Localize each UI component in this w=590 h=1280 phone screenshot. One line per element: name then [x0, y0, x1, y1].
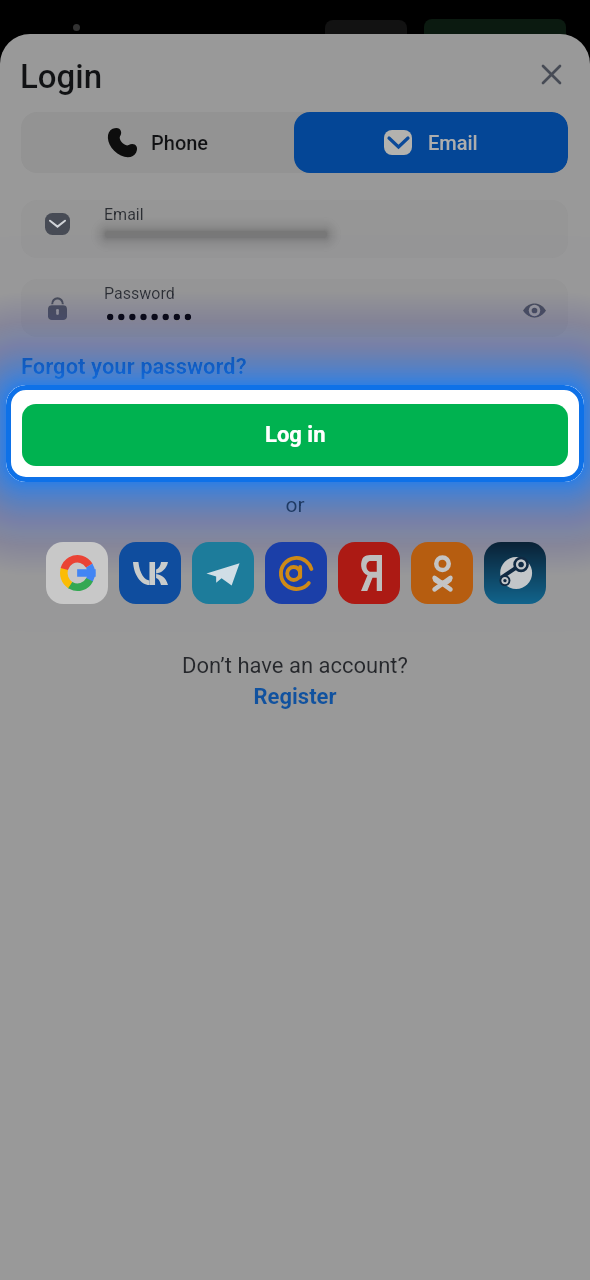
button[interactable]: Sign in with Steam — [484, 542, 546, 604]
button[interactable]: Forgot your password? — [21, 354, 247, 380]
button[interactable]: Close — [530, 53, 572, 95]
button[interactable]: Register — [0, 684, 590, 710]
button[interactable]: Email — [294, 112, 568, 173]
button[interactable]: Sign in with VK — [119, 542, 181, 604]
staticText: Log in — [265, 422, 326, 448]
staticText: or — [0, 493, 590, 518]
staticText: Phone — [151, 131, 209, 154]
button[interactable]: Sign in with Telegram — [192, 542, 254, 604]
button[interactable]: Sign in with Google — [46, 542, 108, 604]
staticText: Email — [104, 205, 144, 224]
staticText: Email — [428, 131, 478, 154]
staticText: Password — [104, 284, 175, 303]
button[interactable]: Sign in with Odnoklassniki — [411, 542, 473, 604]
staticText: Login — [20, 57, 103, 96]
button[interactable]: Email — [21, 200, 568, 258]
button[interactable]: Show password — [516, 292, 552, 328]
button[interactable]: Sign in with Mail.ru — [265, 542, 327, 604]
button[interactable]: Password — [21, 279, 568, 337]
button[interactable]: Phone — [21, 112, 294, 173]
staticText: Don’t have an account? — [0, 653, 590, 679]
button[interactable]: Sign in with Yandex — [338, 542, 400, 604]
button[interactable]: Log in — [6, 385, 584, 482]
